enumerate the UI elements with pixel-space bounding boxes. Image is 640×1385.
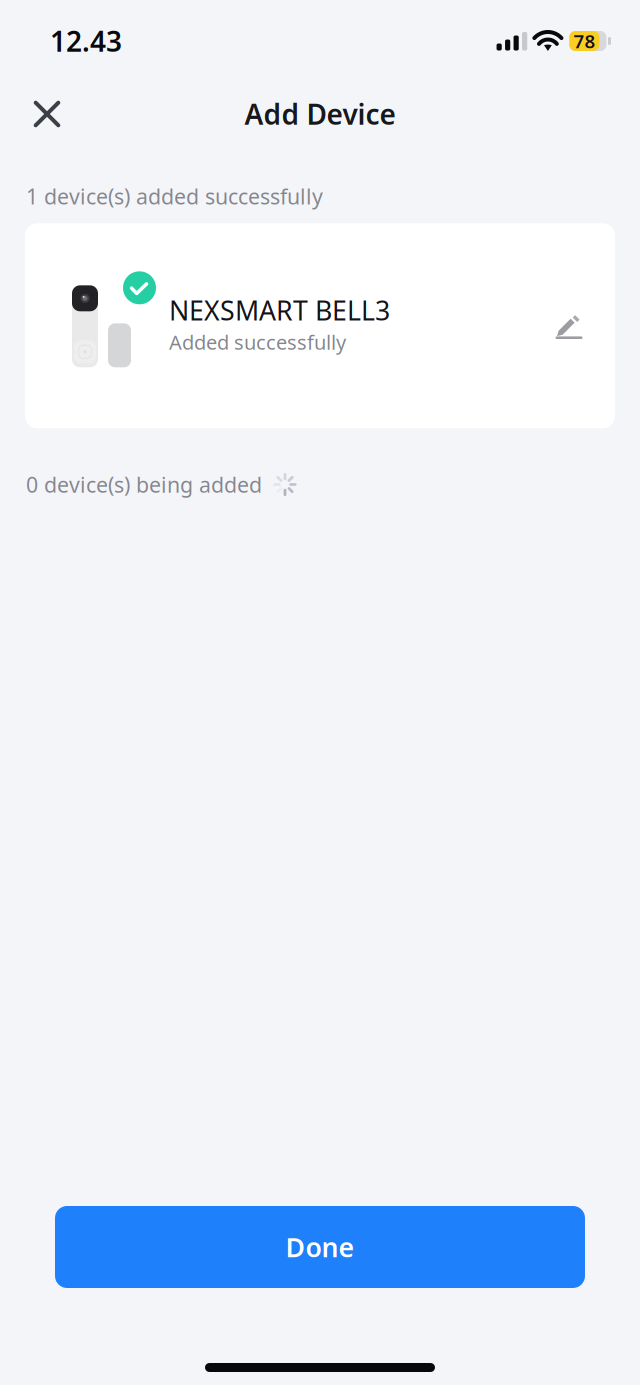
- staticText: 1 device(s) added successfully: [26, 182, 323, 210]
- staticText: Add Device: [244, 95, 395, 133]
- staticText: 0 device(s) being added: [26, 470, 262, 499]
- staticText: 78: [573, 29, 595, 53]
- staticText: 12.43: [50, 22, 122, 60]
- staticText: Done: [285, 1229, 354, 1265]
- button[interactable]: Close: [20, 87, 74, 141]
- staticText: Added successfully: [169, 329, 346, 355]
- button[interactable]: Done: [55, 1206, 585, 1288]
- staticText: NEXSMART BELL3: [169, 292, 390, 328]
- button[interactable]: Rename device: [542, 299, 596, 353]
